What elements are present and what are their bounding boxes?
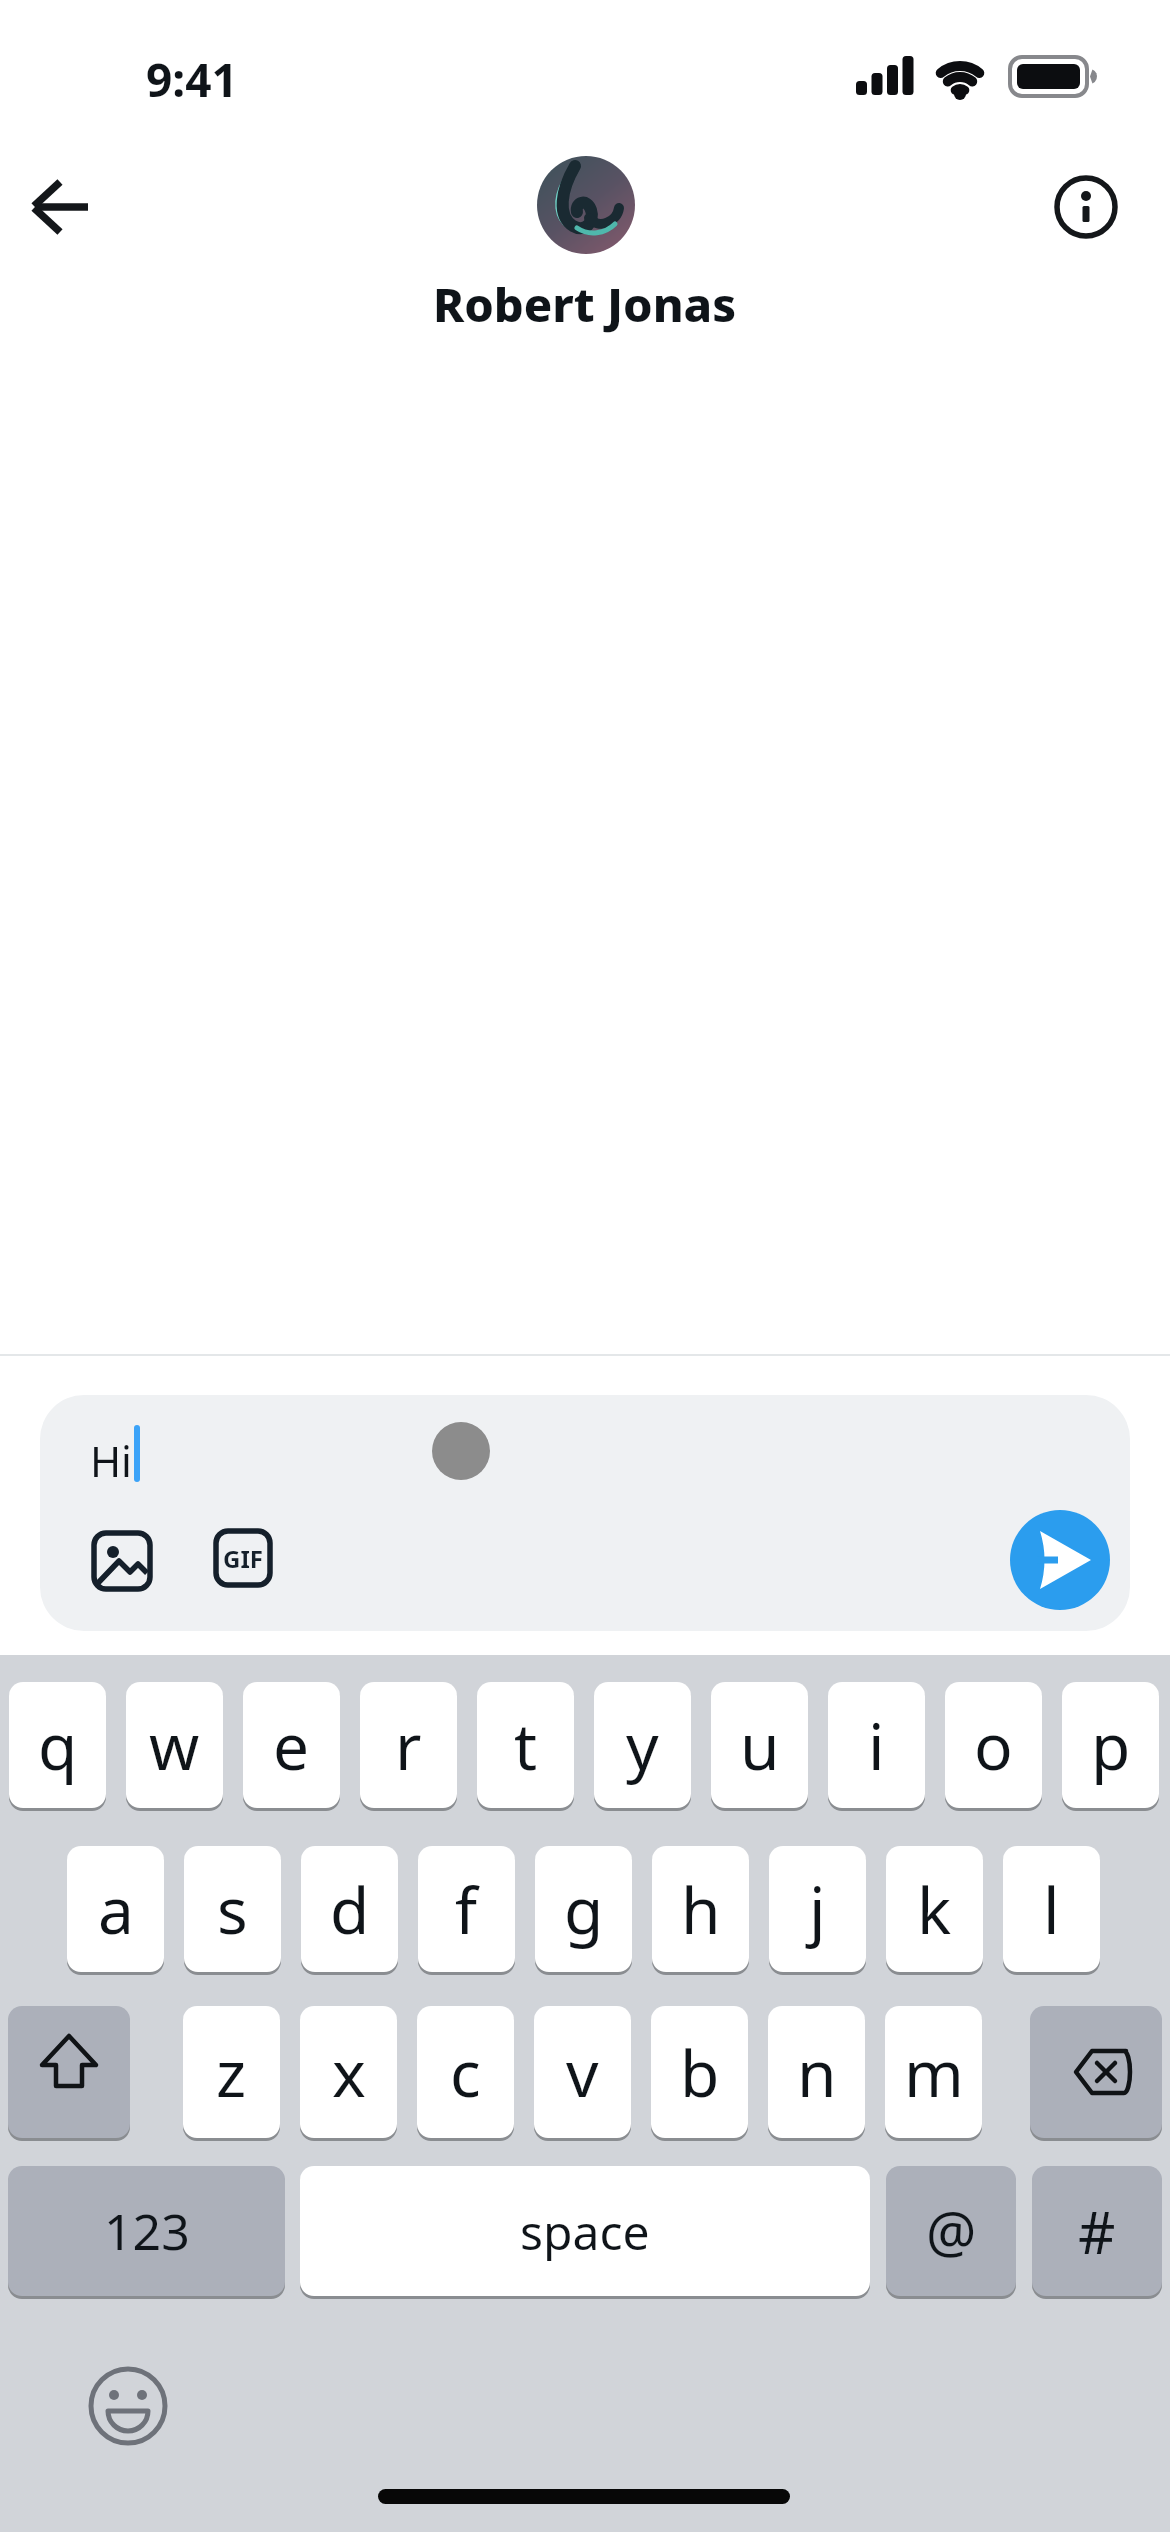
button[interactable]: u: [711, 1682, 808, 1808]
staticText: f: [455, 1866, 478, 1953]
button[interactable]: [1030, 2006, 1162, 2138]
button[interactable]: g: [535, 1846, 632, 1972]
staticText: i: [868, 1702, 885, 1789]
button[interactable]: z: [183, 2006, 280, 2138]
staticText: w: [149, 1702, 200, 1789]
button[interactable]: [537, 156, 635, 254]
staticText: t: [514, 1702, 538, 1789]
staticText: e: [273, 1702, 310, 1789]
button[interactable]: b: [651, 2006, 748, 2138]
staticText: p: [1091, 1702, 1131, 1789]
staticText: x: [332, 2029, 366, 2116]
staticText: b: [680, 2029, 720, 2116]
button[interactable]: [8, 2006, 130, 2138]
button[interactable]: [88, 2366, 168, 2446]
staticText: y: [626, 1702, 659, 1789]
staticText: h: [681, 1866, 721, 1953]
staticText: m: [904, 2029, 964, 2116]
staticText: g: [564, 1866, 604, 1953]
staticText: #: [1078, 2192, 1116, 2271]
staticText: GIF: [223, 1542, 263, 1575]
button[interactable]: q: [9, 1682, 106, 1808]
button[interactable]: v: [534, 2006, 631, 2138]
staticText: k: [917, 1866, 952, 1953]
button[interactable]: @: [886, 2166, 1016, 2296]
staticText: n: [797, 2029, 837, 2116]
staticText: s: [217, 1866, 248, 1953]
button[interactable]: o: [945, 1682, 1042, 1808]
button[interactable]: d: [301, 1846, 398, 1972]
button[interactable]: [1048, 169, 1124, 245]
button[interactable]: #: [1032, 2166, 1162, 2296]
button[interactable]: e: [243, 1682, 340, 1808]
button[interactable]: f: [418, 1846, 515, 1972]
button[interactable]: a: [67, 1846, 164, 1972]
button[interactable]: space: [300, 2166, 870, 2296]
button[interactable]: l: [1003, 1846, 1100, 1972]
button[interactable]: [18, 168, 102, 248]
staticText: Robert Jonas: [433, 272, 737, 336]
button[interactable]: i: [828, 1682, 925, 1808]
button[interactable]: 123: [8, 2166, 285, 2296]
staticText: q: [38, 1702, 78, 1789]
staticText: 9:41: [146, 48, 238, 111]
button[interactable]: s: [184, 1846, 281, 1972]
staticText: v: [566, 2029, 599, 2116]
button[interactable]: h: [652, 1846, 749, 1972]
staticText: d: [330, 1866, 370, 1953]
staticText: 123: [104, 2197, 190, 2265]
staticText: Hi: [90, 1432, 132, 1489]
staticText: z: [216, 2029, 247, 2116]
button[interactable]: m: [885, 2006, 982, 2138]
button[interactable]: t: [477, 1682, 574, 1808]
staticText: @: [926, 2193, 977, 2269]
button[interactable]: GIF: [212, 1527, 274, 1589]
staticText: o: [974, 1702, 1013, 1789]
button[interactable]: p: [1062, 1682, 1159, 1808]
button[interactable]: j: [769, 1846, 866, 1972]
button[interactable]: [1010, 1510, 1110, 1610]
button[interactable]: w: [126, 1682, 223, 1808]
staticText: a: [98, 1866, 134, 1953]
button[interactable]: [86, 1525, 156, 1595]
staticText: j: [809, 1866, 826, 1953]
button[interactable]: x: [300, 2006, 397, 2138]
staticText: u: [740, 1702, 780, 1789]
button[interactable]: r: [360, 1682, 457, 1808]
staticText: c: [450, 2029, 481, 2116]
staticText: r: [395, 1702, 422, 1789]
button[interactable]: c: [417, 2006, 514, 2138]
staticText: l: [1043, 1866, 1060, 1953]
button[interactable]: k: [886, 1846, 983, 1972]
button[interactable]: n: [768, 2006, 865, 2138]
staticText: space: [520, 2199, 650, 2264]
button[interactable]: y: [594, 1682, 691, 1808]
